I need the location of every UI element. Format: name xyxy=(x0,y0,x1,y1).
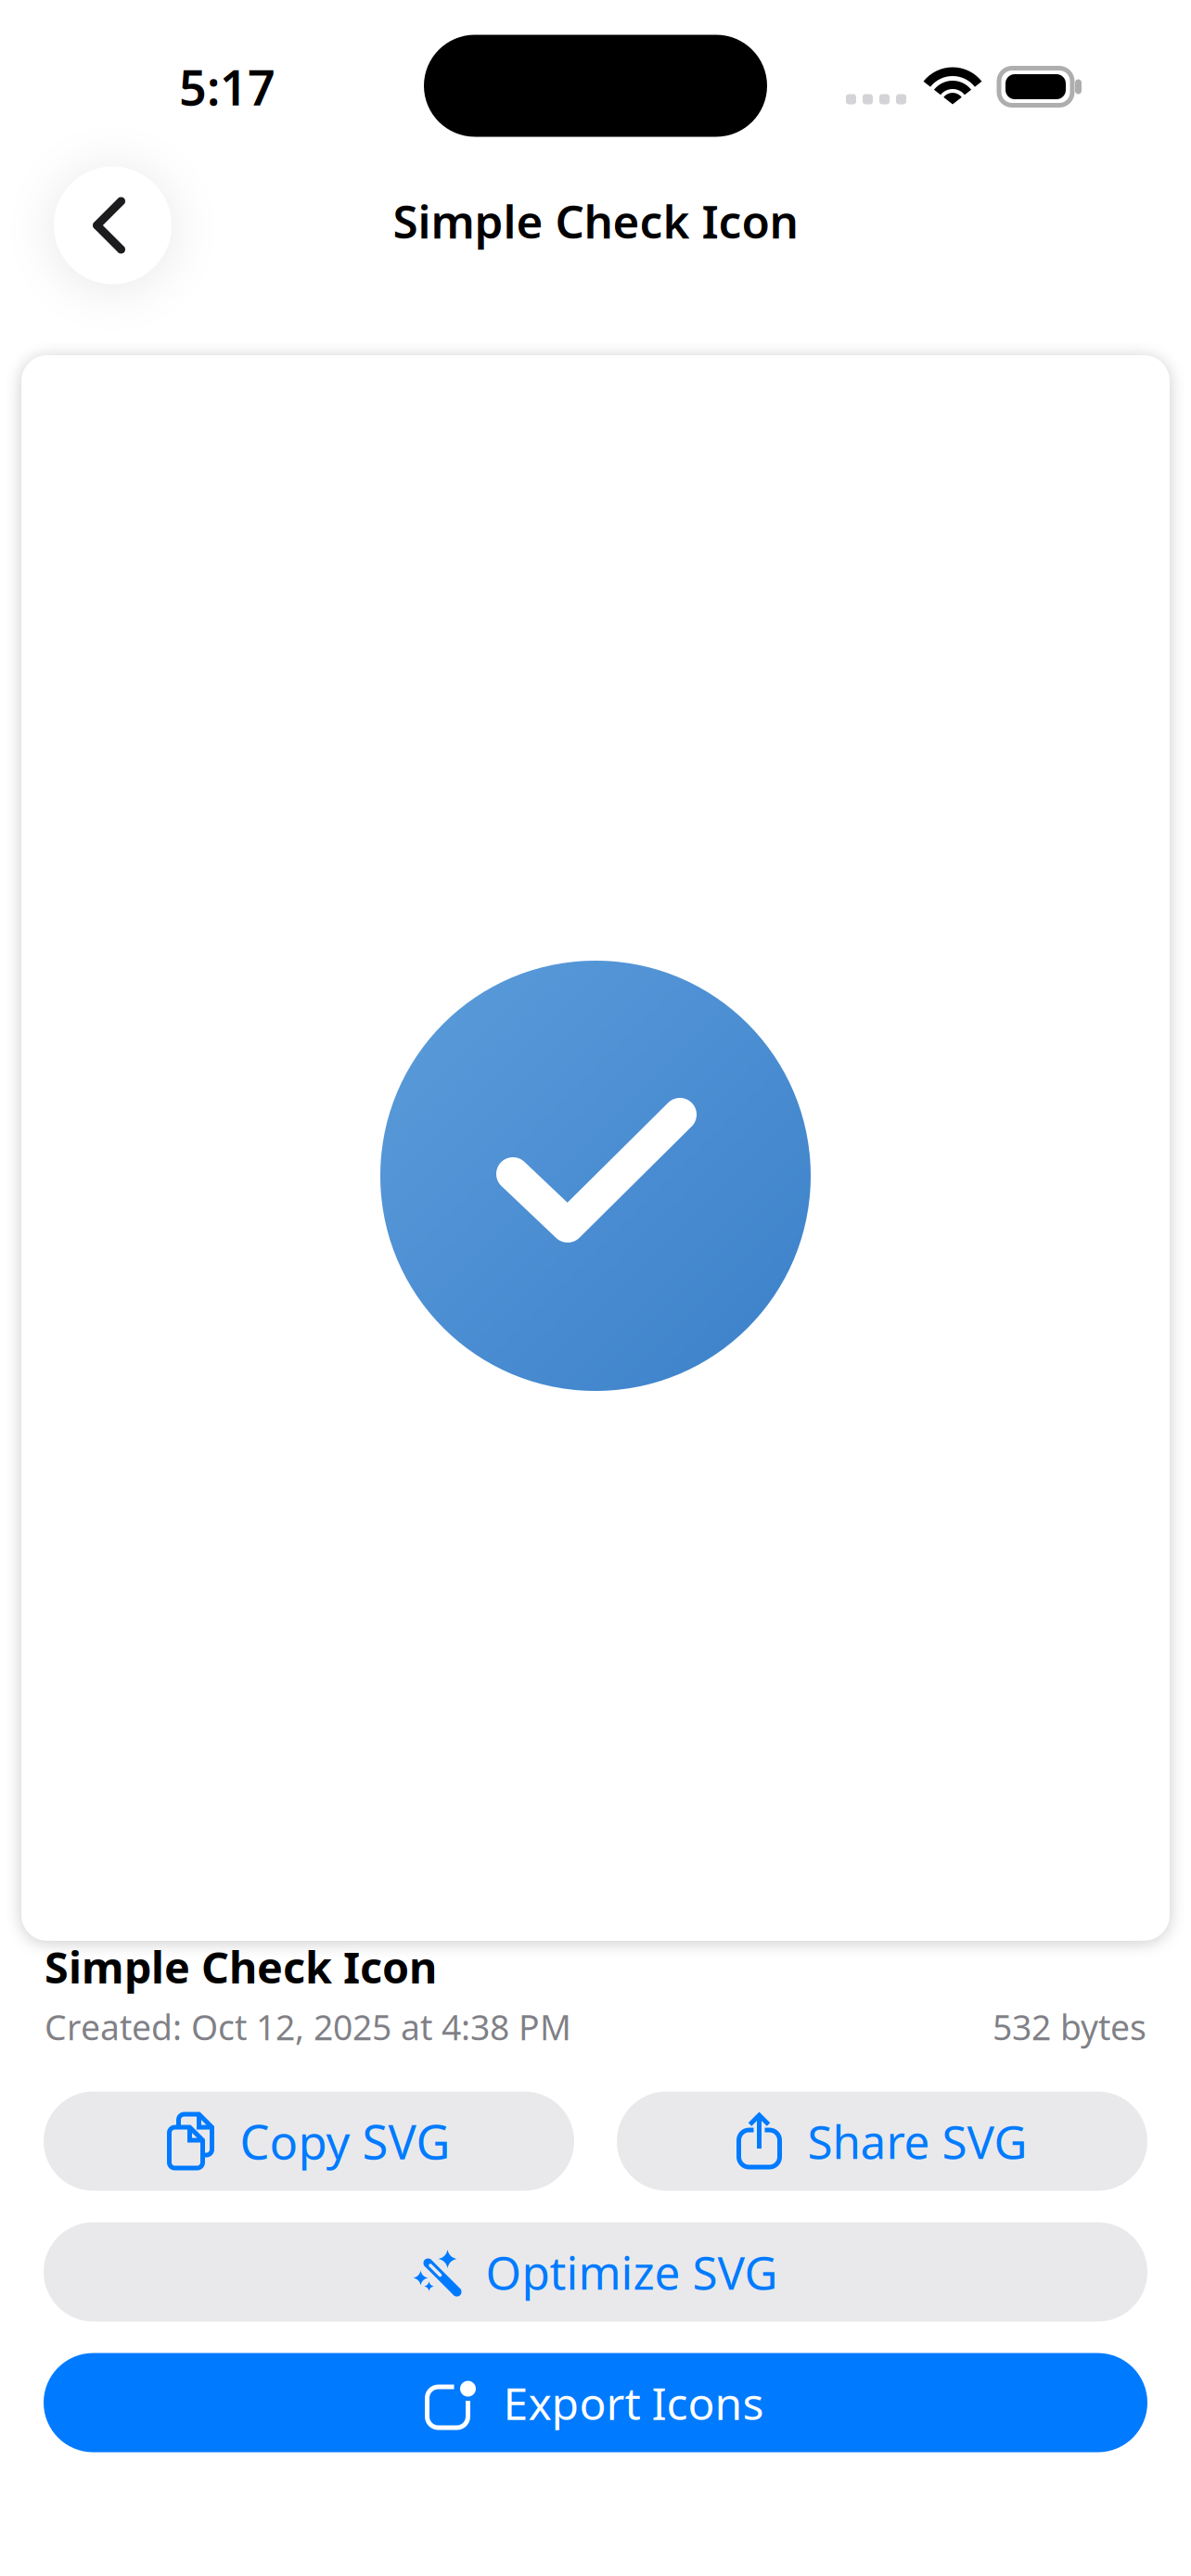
staticText: 5:17 xyxy=(179,55,275,119)
staticText: Share SVG xyxy=(807,2111,1027,2172)
staticText: Copy SVG xyxy=(240,2110,450,2172)
staticText: Simple Check Icon xyxy=(393,190,798,251)
staticText: Export Icons xyxy=(503,2373,764,2432)
button[interactable]: Copy SVG xyxy=(44,2091,574,2191)
staticText: Simple Check Icon xyxy=(45,1938,437,1996)
staticText: Optimize SVG xyxy=(486,2242,778,2302)
button[interactable]: Back xyxy=(54,166,172,284)
button[interactable]: Share SVG xyxy=(617,2091,1147,2191)
button[interactable]: Optimize SVG xyxy=(44,2222,1147,2321)
staticText: Created: Oct 12, 2025 at 4:38 PM xyxy=(45,2004,571,2050)
staticText: 532 bytes xyxy=(992,2004,1146,2050)
button[interactable]: Export Icons xyxy=(44,2353,1147,2452)
